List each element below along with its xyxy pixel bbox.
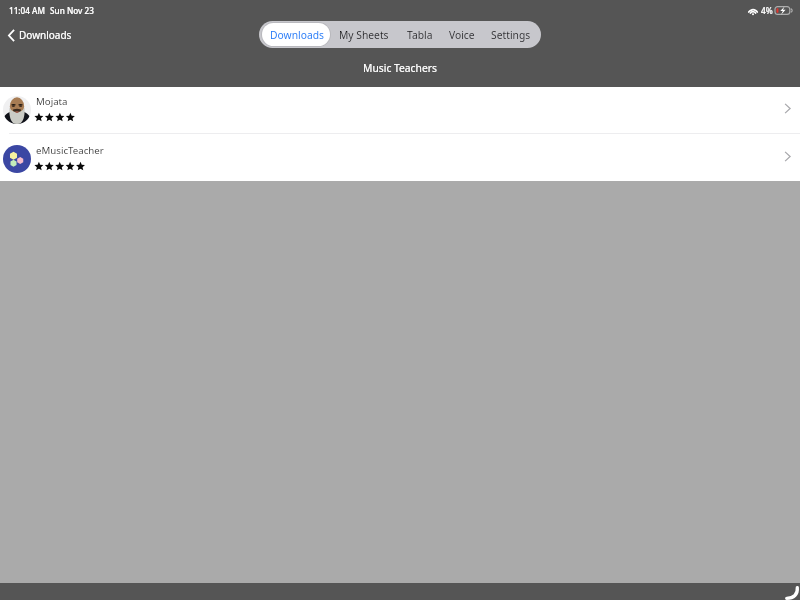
staticText: 4% bbox=[761, 5, 773, 16]
button[interactable]: Settings bbox=[486, 23, 538, 46]
staticText: Music Teachers bbox=[363, 61, 437, 75]
button[interactable]: Voice bbox=[444, 23, 480, 46]
button[interactable]: eMusicTeacher bbox=[0, 134, 800, 181]
button[interactable]: Back to Downloads bbox=[4, 25, 76, 45]
button[interactable]: Mojata bbox=[0, 87, 800, 133]
staticText: Downloads bbox=[19, 28, 72, 42]
staticText: My Sheets bbox=[339, 28, 389, 42]
staticText: Downloads bbox=[270, 28, 324, 42]
staticText: Voice bbox=[449, 28, 475, 42]
button[interactable]: Downloads bbox=[262, 23, 330, 46]
button[interactable]: Open Mojata bbox=[774, 95, 800, 121]
button[interactable]: Open eMusicTeacher bbox=[774, 143, 800, 169]
staticText: Tabla bbox=[407, 28, 433, 42]
staticText: Settings bbox=[491, 28, 531, 42]
staticText: Mojata bbox=[36, 95, 68, 108]
button[interactable]: Tabla bbox=[396, 23, 438, 46]
staticText: 11:04 AM bbox=[9, 5, 45, 16]
staticText: Sun Nov 23 bbox=[50, 5, 94, 16]
staticText: eMusicTeacher bbox=[36, 144, 104, 157]
button[interactable]: My Sheets bbox=[336, 23, 390, 46]
